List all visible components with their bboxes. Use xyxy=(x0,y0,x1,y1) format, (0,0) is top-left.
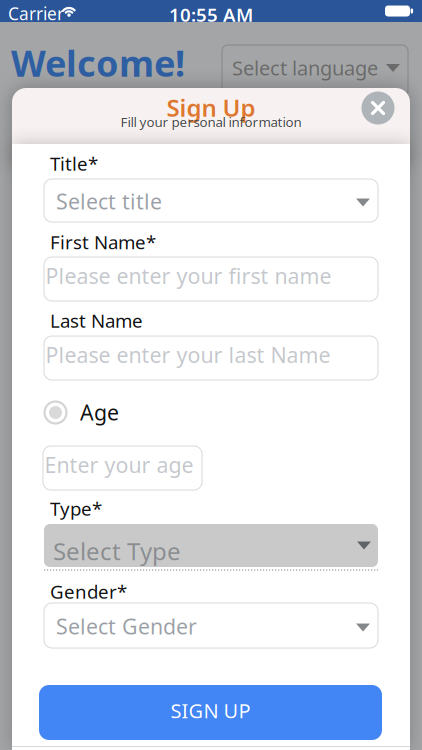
staticText: Welcome! xyxy=(11,39,185,87)
staticText: Fill your personal information xyxy=(120,113,301,131)
button[interactable]: Enter your age xyxy=(43,446,202,490)
staticText: Title* xyxy=(50,151,98,176)
button[interactable]: Please enter your first name xyxy=(44,257,378,301)
button[interactable]: Select language xyxy=(222,45,408,97)
staticText: Please enter your last Name xyxy=(45,340,330,369)
staticText: Select title xyxy=(56,187,162,215)
staticText: Type* xyxy=(50,496,102,521)
staticText: Select language xyxy=(232,54,378,81)
staticText: Sign Up xyxy=(166,91,255,123)
staticText: Last Name xyxy=(50,308,143,333)
staticText: SIGN UP xyxy=(170,697,250,724)
staticText: Age xyxy=(80,398,119,426)
staticText: First Name* xyxy=(50,229,156,254)
button[interactable]: Select Type xyxy=(44,524,378,567)
staticText: 10:55 AM xyxy=(169,2,253,27)
staticText: Gender* xyxy=(50,579,127,604)
button[interactable]: Select Gender xyxy=(44,603,378,648)
staticText: Please enter your first name xyxy=(45,261,331,290)
button[interactable]: Select title xyxy=(44,179,378,222)
button[interactable]: Close xyxy=(361,91,394,124)
staticText: Carrier xyxy=(8,2,64,25)
button[interactable]: SIGN UP xyxy=(39,685,382,740)
staticText: Enter your age xyxy=(44,450,193,479)
button[interactable]: Please enter your last Name xyxy=(44,336,378,380)
staticText: Select Type xyxy=(53,535,181,567)
button[interactable]: Age xyxy=(44,401,122,425)
staticText: Select Gender xyxy=(56,612,197,640)
